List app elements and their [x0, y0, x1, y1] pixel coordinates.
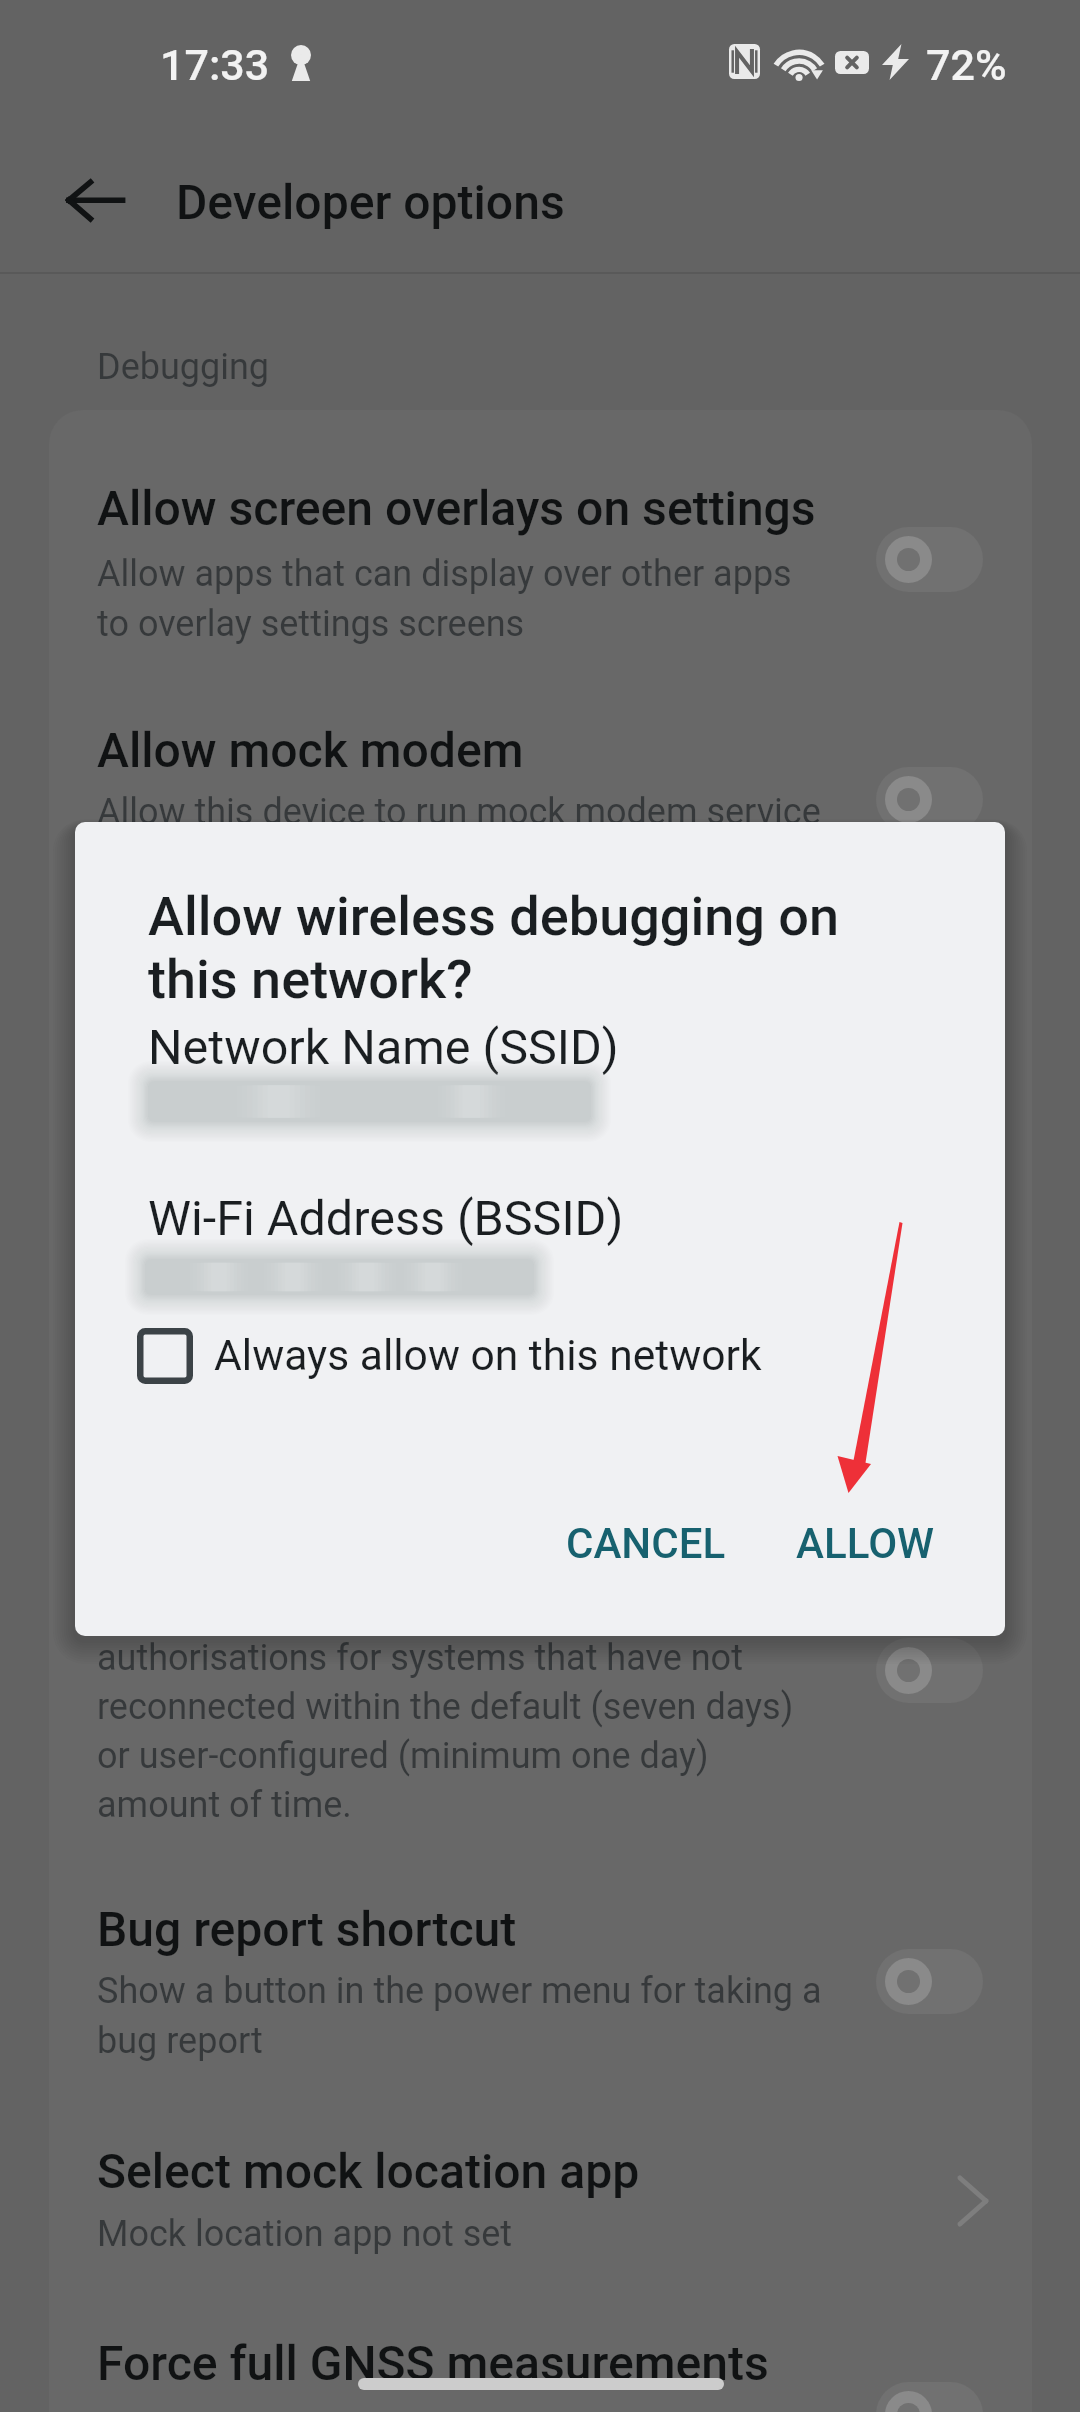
button[interactable]: Bug report shortcut: [49, 1893, 1032, 2071]
staticText: Wi-Fi Address (BSSID): [148, 1190, 624, 1247]
button[interactable]: Toggle Bug report shortcut: [876, 1949, 983, 2014]
button[interactable]: Always allow on this network: [123, 1318, 835, 1392]
button[interactable]: Select mock location app: [49, 2136, 1032, 2314]
button[interactable]: Allow mock modem: [49, 715, 1032, 893]
button[interactable]: Allow wireless debugging: [49, 1462, 1032, 1640]
staticText: Enable view attribute inspection: [97, 1204, 782, 1260]
staticText: Bug report shortcut: [97, 1901, 517, 1957]
staticText: Allow this device to run mock modem serv…: [97, 791, 821, 833]
button[interactable]: Back: [52, 155, 142, 245]
button[interactable]: Toggle Allow screen overlays on settings: [876, 527, 983, 592]
button[interactable]: Allow screen overlays on settings: [49, 473, 1032, 654]
staticText: 17:33: [160, 40, 270, 90]
button[interactable]: ALLOW: [766, 1496, 962, 1588]
button[interactable]: Toggle Allow wireless debugging: [876, 1638, 983, 1703]
button[interactable]: Allow mock location: [49, 956, 1032, 1134]
staticText: Wireless debugging authorisations expire…: [97, 1538, 885, 1826]
staticText: CANCEL: [566, 1519, 726, 1568]
staticText: Allow this device to provide mock locati…: [97, 1033, 788, 1075]
staticText: 72%: [926, 40, 1007, 90]
staticText: Debugging: [97, 346, 270, 388]
staticText: Mock location app not set: [97, 2213, 513, 2255]
button[interactable]: CANCEL: [536, 1496, 750, 1588]
button[interactable]: Force full GNSS measurements: [49, 2328, 1032, 2412]
staticText: Allow wireless debugging on this network…: [148, 885, 840, 1011]
button[interactable]: Open Select mock location app: [928, 2156, 1018, 2246]
button[interactable]: Toggle Force full GNSS measurements: [876, 2382, 983, 2412]
staticText: Network Name (SSID): [148, 1019, 619, 1076]
staticText: Show a button in the power menu for taki…: [97, 1970, 822, 2062]
button[interactable]: Enable view attribute inspection: [49, 1197, 1032, 1375]
button[interactable]: Toggle Enable view attribute inspection: [876, 1249, 983, 1314]
staticText: Allow apps that can display over other a…: [97, 553, 792, 645]
staticText: Force full GNSS measurements: [97, 2335, 769, 2391]
staticText: Allow mock location: [97, 963, 533, 1019]
staticText: Always allow on this network: [214, 1330, 762, 1380]
staticText: Store view attribute information: [97, 1274, 602, 1316]
staticText: Allow mock modem: [97, 722, 524, 778]
staticText: ALLOW: [796, 1519, 935, 1568]
staticText: Allow screen overlays on settings: [97, 480, 816, 536]
button[interactable]: Toggle Allow mock modem: [876, 767, 983, 832]
staticText: Select mock location app: [97, 2143, 640, 2199]
staticText: Developer options: [176, 174, 565, 230]
